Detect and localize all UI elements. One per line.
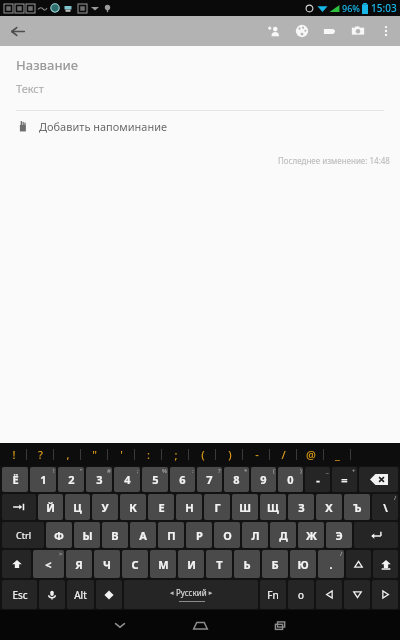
button[interactable]: \ (372, 494, 398, 520)
staticText: Е (158, 500, 165, 515)
button[interactable]: Г (204, 494, 230, 520)
staticText: 4 (124, 472, 131, 487)
button[interactable]: Ь (234, 550, 260, 578)
button[interactable]: У (92, 494, 118, 520)
button[interactable]: 1 (30, 467, 56, 492)
button[interactable]: Change colour (288, 16, 316, 46)
button[interactable]: ( (189, 443, 216, 466)
button[interactable]: mic (39, 580, 65, 609)
button[interactable]: : (135, 443, 162, 466)
button[interactable]: , (54, 443, 81, 466)
staticText: / (394, 494, 397, 502)
button[interactable]: Hide keyboard (80, 610, 160, 640)
button[interactable]: 2 (58, 467, 84, 492)
button[interactable]: 8 (224, 467, 249, 492)
button[interactable]: - (243, 443, 270, 466)
button[interactable]: Л (242, 522, 268, 548)
staticText: П (167, 528, 176, 543)
staticText: \ (383, 500, 388, 515)
button[interactable]: backspace (359, 467, 398, 492)
button[interactable]: . (318, 550, 344, 578)
staticText: ! (53, 467, 55, 475)
button[interactable]: В (102, 522, 128, 548)
button[interactable]: shift2 (373, 550, 398, 578)
button[interactable]: Ц (65, 494, 90, 520)
button[interactable]: Fn (260, 580, 286, 609)
button[interactable]: tab (2, 494, 36, 520)
button[interactable]: More options (372, 16, 400, 46)
button[interactable]: space (124, 580, 258, 609)
button[interactable]: Добавить напоминание (0, 111, 400, 141)
button[interactable]: Н (176, 494, 202, 520)
button[interactable]: И (178, 550, 204, 578)
button[interactable]: 3 (86, 467, 112, 492)
button[interactable]: Label (316, 16, 344, 46)
button[interactable]: Э (326, 522, 352, 548)
button[interactable]: Recent apps (240, 610, 320, 640)
staticText: А (139, 528, 147, 543)
staticText: : (147, 447, 150, 462)
button[interactable]: Щ (260, 494, 286, 520)
button[interactable]: Ф (46, 522, 72, 548)
staticText: _ (335, 447, 340, 462)
button[interactable]: ; (162, 443, 189, 466)
button[interactable]: З (288, 494, 314, 520)
button[interactable]: Add collaborator (260, 16, 288, 46)
button[interactable]: 0 (278, 467, 303, 492)
button[interactable]: Б (262, 550, 288, 578)
button[interactable]: Т (206, 550, 232, 578)
button[interactable]: Х (316, 494, 342, 520)
button[interactable]: down (344, 580, 370, 609)
button[interactable]: А (130, 522, 156, 548)
button[interactable]: Е (148, 494, 174, 520)
button[interactable]: ! (0, 443, 27, 466)
button[interactable]: ) (216, 443, 243, 466)
button[interactable]: о (288, 580, 314, 609)
button[interactable]: 7 (197, 467, 222, 492)
button[interactable]: 5 (142, 467, 168, 492)
button[interactable]: Й (38, 494, 63, 520)
button[interactable]: Я (66, 550, 92, 578)
button[interactable]: right (372, 580, 398, 609)
button[interactable]: 6 (170, 467, 195, 492)
button[interactable]: Esc (2, 580, 37, 609)
button[interactable]: Ё (2, 467, 28, 492)
button[interactable]: Add image (344, 16, 372, 46)
button[interactable]: - (305, 467, 330, 492)
button[interactable]: 9 (251, 467, 276, 492)
button[interactable]: 4 (114, 467, 140, 492)
button[interactable]: С (122, 550, 148, 578)
button[interactable]: _ (324, 443, 351, 466)
button[interactable]: / (270, 443, 297, 466)
button[interactable]: = (332, 467, 357, 492)
button[interactable]: Ж (298, 522, 324, 548)
button[interactable]: Ctrl (2, 522, 44, 548)
button[interactable]: < (33, 550, 64, 578)
button[interactable]: Back (0, 16, 34, 46)
button[interactable]: Д (270, 522, 296, 548)
staticText: - (255, 447, 259, 462)
button[interactable]: left (316, 580, 342, 609)
button[interactable]: Р (186, 522, 212, 548)
button[interactable]: " (81, 443, 108, 466)
button[interactable]: shift (2, 550, 31, 578)
button[interactable]: Alt (67, 580, 94, 609)
button[interactable]: enter (354, 522, 398, 548)
button[interactable]: П (158, 522, 184, 548)
staticText: У (101, 500, 109, 515)
button[interactable]: Ч (94, 550, 120, 578)
button[interactable]: Home (160, 610, 240, 640)
button[interactable]: diamond (96, 580, 122, 609)
button[interactable]: К (120, 494, 146, 520)
button[interactable]: Ю (290, 550, 316, 578)
button[interactable]: @ (297, 443, 324, 466)
button[interactable]: Ъ (344, 494, 370, 520)
button[interactable]: ? (27, 443, 54, 466)
button[interactable]: Ы (74, 522, 100, 548)
button[interactable]: ' (108, 443, 135, 466)
button[interactable]: О (214, 522, 240, 548)
staticText: Последнее изменение: 14:48 (278, 155, 390, 166)
button[interactable]: up (346, 550, 371, 578)
button[interactable]: М (150, 550, 176, 578)
button[interactable]: Ш (232, 494, 258, 520)
